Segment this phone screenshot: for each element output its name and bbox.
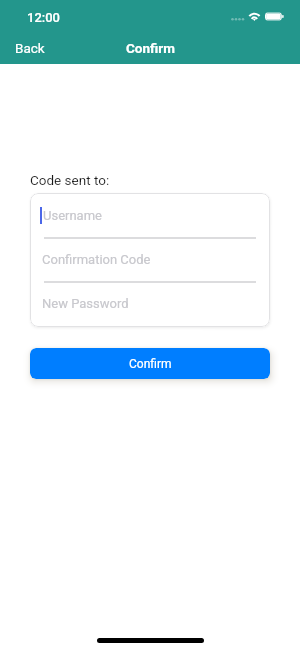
other: Status icons (229, 10, 285, 23)
staticText: New Password (42, 296, 129, 311)
staticText: 12:00 (27, 10, 60, 25)
staticText: Confirm (126, 40, 175, 56)
button[interactable]: Back (0, 30, 60, 64)
button[interactable]: Confirm (30, 348, 270, 379)
staticText: Confirmation Code (42, 252, 151, 267)
staticText: Confirm (129, 357, 172, 371)
staticText: Code sent to: (30, 172, 110, 188)
staticText: Username (43, 208, 102, 223)
staticText: Back (15, 40, 45, 56)
